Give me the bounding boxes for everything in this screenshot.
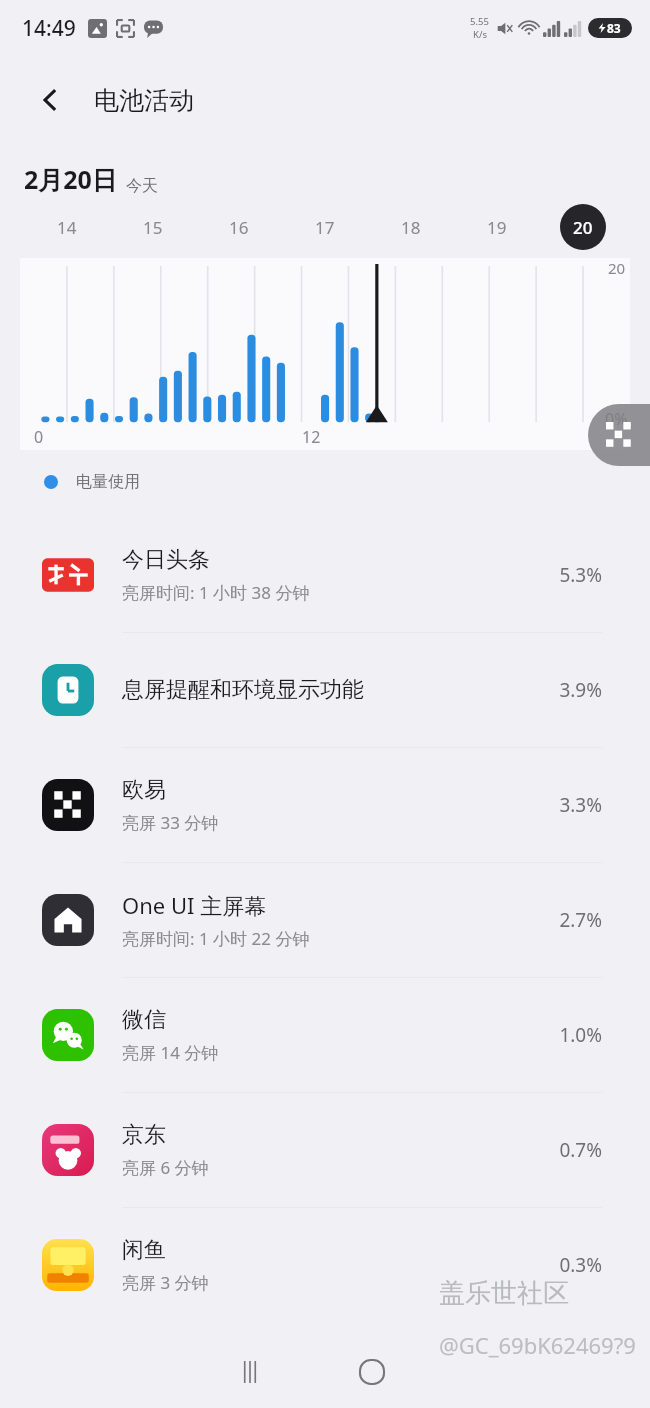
staticText: 1.0% bbox=[559, 1022, 602, 1048]
button[interactable]: 18 bbox=[368, 196, 454, 258]
staticText: 电量使用 bbox=[76, 472, 140, 492]
staticText: 2月20日 bbox=[24, 162, 117, 196]
staticText: 亮屏 3 分钟 bbox=[122, 1271, 209, 1294]
staticText: 20 bbox=[608, 258, 626, 278]
staticText: One UI 主屏幕 bbox=[122, 890, 267, 920]
button[interactable]: Recents bbox=[223, 1345, 277, 1399]
staticText: 闲鱼 bbox=[122, 1236, 166, 1264]
staticText: 息屏提醒和环境显示功能 bbox=[122, 676, 364, 704]
button[interactable]: 京东 bbox=[0, 1093, 650, 1207]
button[interactable]: 14 bbox=[24, 196, 110, 258]
staticText: 14 bbox=[57, 216, 77, 239]
staticText: 微信 bbox=[122, 1006, 166, 1034]
staticText: 18 bbox=[401, 216, 421, 239]
button[interactable]: OKX floating shortcut bbox=[588, 404, 650, 466]
staticText: 京东 bbox=[122, 1121, 166, 1149]
staticText: 0% bbox=[605, 408, 628, 430]
button[interactable]: 16 bbox=[196, 196, 282, 258]
staticText: 12 bbox=[302, 426, 321, 448]
staticText: 15 bbox=[143, 216, 163, 239]
staticText: 83 bbox=[607, 20, 621, 36]
staticText: 0.7% bbox=[559, 1137, 602, 1163]
button[interactable]: 15 bbox=[110, 196, 196, 258]
button[interactable]: One UI 主屏幕 bbox=[0, 863, 650, 977]
button[interactable]: 息屏提醒和环境显示功能 bbox=[0, 633, 650, 747]
staticText: 亮屏 6 分钟 bbox=[122, 1156, 209, 1179]
button[interactable]: Back bbox=[24, 73, 78, 127]
staticText: 19 bbox=[487, 216, 507, 239]
staticText: 20 bbox=[573, 216, 593, 239]
staticText: K/s bbox=[473, 28, 487, 41]
button[interactable]: 17 bbox=[282, 196, 368, 258]
button[interactable]: 欧易 bbox=[0, 748, 650, 862]
staticText: 5.3% bbox=[559, 562, 602, 588]
staticText: 盖乐世社区 bbox=[439, 1277, 569, 1310]
staticText: 亮屏 33 分钟 bbox=[122, 811, 219, 834]
staticText: 电池活动 bbox=[94, 85, 194, 116]
staticText: 5.55 bbox=[470, 15, 489, 28]
staticText: 0.3% bbox=[559, 1252, 602, 1278]
staticText: 今天 bbox=[126, 176, 158, 196]
staticText: 2.7% bbox=[559, 907, 602, 933]
staticText: 3.9% bbox=[559, 677, 602, 703]
button[interactable]: 20 bbox=[540, 196, 626, 258]
staticText: 亮屏 14 分钟 bbox=[122, 1041, 219, 1064]
staticText: 14:49 bbox=[22, 14, 76, 43]
staticText: 今日头条 bbox=[122, 546, 210, 574]
staticText: 亮屏时间: 1 小时 22 分钟 bbox=[122, 927, 310, 950]
button[interactable]: Home bbox=[345, 1345, 399, 1399]
staticText: 16 bbox=[229, 216, 249, 239]
staticText: 3.3% bbox=[559, 792, 602, 818]
staticText: 17 bbox=[315, 216, 335, 239]
button[interactable]: 19 bbox=[454, 196, 540, 258]
button[interactable]: 闲鱼 bbox=[0, 1208, 650, 1322]
staticText: 0 bbox=[34, 426, 44, 448]
staticText: 亮屏时间: 1 小时 38 分钟 bbox=[122, 581, 310, 604]
staticText: @GC_69bK62469?9 bbox=[439, 1330, 636, 1360]
button[interactable]: 今日头条 bbox=[0, 518, 650, 632]
staticText: 欧易 bbox=[122, 776, 166, 804]
button[interactable]: 微信 bbox=[0, 978, 650, 1092]
